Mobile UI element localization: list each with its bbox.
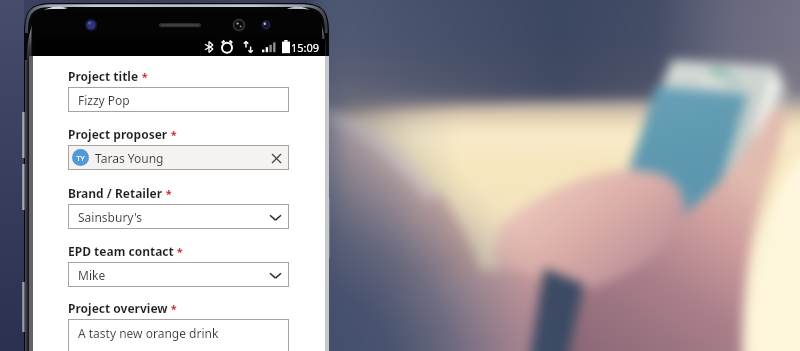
- staticText: *: [168, 127, 177, 142]
- button[interactable]: Fizzy Pop: [68, 87, 289, 112]
- staticText: Project proposer: [68, 126, 168, 142]
- staticText: *: [174, 244, 183, 259]
- staticText: A tasty new orange drink: [78, 325, 219, 341]
- button[interactable]: Sainsbury's: [68, 204, 289, 229]
- button[interactable]: Open Mike dropdown: [265, 265, 285, 285]
- button[interactable]: TY: [68, 145, 289, 170]
- staticText: Fizzy Pop: [78, 92, 130, 108]
- staticText: EPD team contact: [68, 243, 174, 259]
- button[interactable]: A tasty new orange drink: [68, 319, 289, 351]
- staticText: *: [168, 301, 177, 316]
- staticText: *: [163, 186, 172, 201]
- staticText: Brand / Retailer: [68, 185, 163, 201]
- staticText: Sainsbury's: [78, 209, 143, 225]
- staticText: Project title: [68, 68, 139, 84]
- staticText: Taras Young: [95, 150, 164, 166]
- button[interactable]: Open Sainsbury's dropdown: [265, 207, 285, 227]
- button[interactable]: Remove Taras Young: [266, 148, 286, 168]
- staticText: TY: [76, 153, 85, 163]
- staticText: Project overview: [68, 300, 168, 316]
- staticText: *: [139, 69, 148, 84]
- button[interactable]: Mike: [68, 262, 289, 287]
- staticText: 15:09: [291, 40, 320, 55]
- staticText: Mike: [78, 267, 106, 283]
